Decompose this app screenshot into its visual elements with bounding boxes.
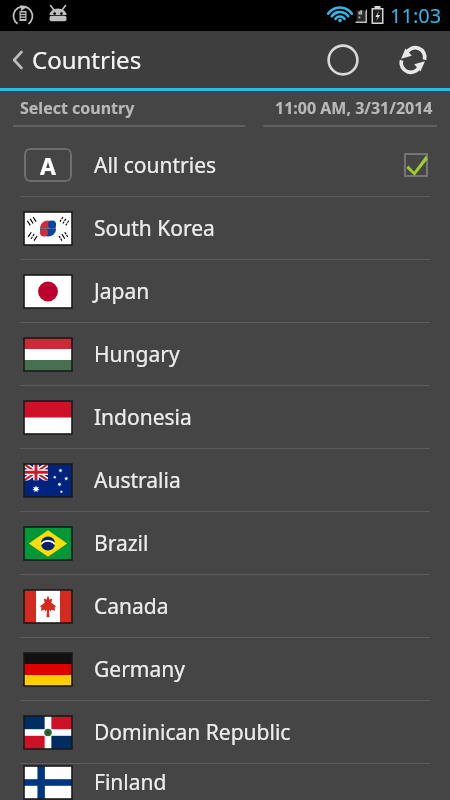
- button[interactable]: Countries: [0, 37, 150, 82]
- staticText: Japan: [94, 277, 150, 306]
- button[interactable]: Indonesia: [0, 386, 450, 448]
- staticText: Canada: [94, 592, 169, 621]
- button[interactable]: Canada: [0, 575, 450, 637]
- staticText: All countries: [94, 151, 217, 180]
- staticText: A: [40, 150, 56, 181]
- button[interactable]: Refresh: [390, 37, 436, 83]
- staticText: Countries: [32, 43, 142, 76]
- button[interactable]: Japan: [0, 260, 450, 322]
- staticText: Germany: [94, 655, 185, 684]
- button[interactable]: Finland: [0, 764, 450, 800]
- staticText: Brazil: [94, 529, 149, 558]
- button[interactable]: Dominican Republic: [0, 701, 450, 763]
- button[interactable]: Hungary: [0, 323, 450, 385]
- button[interactable]: Status: [320, 37, 366, 83]
- staticText: South Korea: [94, 214, 215, 243]
- staticText: 11:00 AM, 3/31/2014: [275, 97, 433, 119]
- staticText: Dominican Republic: [94, 718, 291, 747]
- staticText: Select country: [20, 97, 135, 119]
- staticText: Australia: [94, 466, 181, 495]
- staticText: Hungary: [94, 340, 180, 369]
- button[interactable]: A: [0, 134, 450, 196]
- staticText: 11:03: [390, 2, 442, 29]
- button[interactable]: South Korea: [0, 197, 450, 259]
- button[interactable]: Australia: [0, 449, 450, 511]
- staticText: Finland: [94, 768, 167, 797]
- button[interactable]: Germany: [0, 638, 450, 700]
- staticText: Indonesia: [94, 403, 192, 432]
- button[interactable]: Brazil: [0, 512, 450, 574]
